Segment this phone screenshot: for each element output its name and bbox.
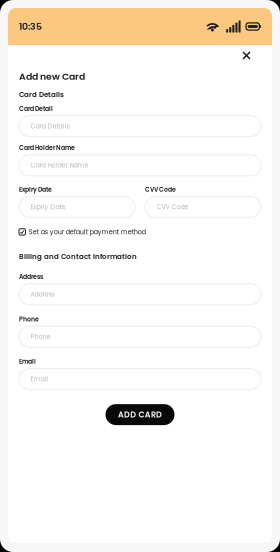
staticText: ADD CARD (118, 409, 162, 420)
staticText: CVV Code (156, 202, 188, 211)
staticText: Billing and Contact Information (19, 252, 137, 261)
button[interactable]: ADD CARD (105, 404, 174, 425)
staticText: Expiry Date (19, 185, 52, 194)
staticText: Expiry Date (30, 202, 65, 211)
staticText: Address (30, 290, 54, 299)
staticText: Phone (19, 315, 39, 324)
staticText: Card Holder Name (19, 144, 75, 152)
staticText: Card Detail (19, 104, 53, 113)
staticText: CVV Code (145, 185, 176, 194)
button[interactable]: Set as your default payment method (19, 227, 146, 237)
staticText: Email (19, 357, 36, 366)
staticText: Address (19, 273, 43, 281)
button[interactable]: Close (236, 45, 257, 66)
staticText: 10:35 (19, 20, 42, 33)
staticText: Phone (30, 332, 50, 341)
staticText: Card Holder Name (30, 161, 88, 170)
staticText: Email (30, 375, 48, 384)
staticText: Card Details (19, 89, 64, 99)
staticText: Card Details (30, 122, 69, 131)
staticText: Add new Card (19, 70, 85, 83)
staticText: Set as your default payment method (29, 227, 146, 236)
